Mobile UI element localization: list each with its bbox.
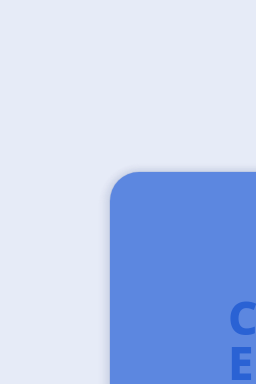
button[interactable]: Feature card: [110, 172, 256, 384]
staticText: CODE: [228, 286, 256, 384]
